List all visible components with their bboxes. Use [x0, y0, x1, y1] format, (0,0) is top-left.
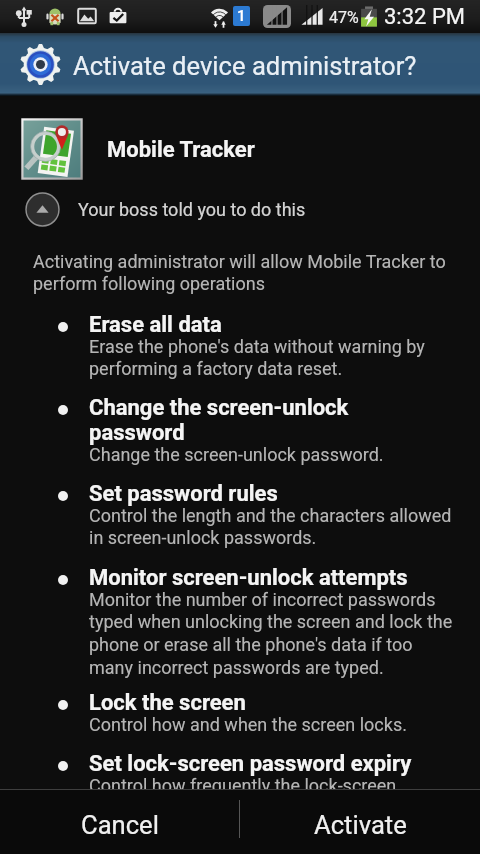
staticText: Erase all data	[89, 312, 439, 338]
staticText: Monitor the number of incorrect password…	[89, 589, 455, 679]
staticText: Control how and when the screen locks.	[89, 714, 455, 735]
staticText: Change the screen-unlock password	[89, 395, 439, 446]
button[interactable]: Activate	[240, 790, 480, 854]
staticText: Control how frequently the lock-screen	[89, 775, 455, 796]
staticText: Change the screen-unlock password.	[89, 444, 455, 465]
staticText: Erase the phone's data without warning b…	[89, 336, 455, 380]
staticText: Control the length and the characters al…	[89, 505, 455, 549]
staticText: Lock the screen	[89, 690, 439, 716]
staticText: Activating administrator will allow Mobi…	[33, 251, 449, 295]
staticText: Mobile Tracker	[107, 137, 255, 163]
staticText: Activate device administrator?	[73, 51, 417, 81]
staticText: 1	[237, 7, 246, 25]
staticText: Your boss told you to do this	[78, 199, 306, 220]
button[interactable]: Your boss told you to do this	[20, 188, 312, 230]
staticText: Set password rules	[89, 481, 439, 507]
staticText: Set lock-screen password expiry	[89, 751, 439, 777]
staticText: 3:32 PM	[384, 4, 465, 30]
staticText: Monitor screen-unlock attempts	[89, 565, 439, 591]
button[interactable]: Cancel	[0, 790, 239, 854]
staticText: Cancel	[81, 810, 159, 840]
staticText: 47%	[329, 8, 359, 27]
staticText: Activate	[314, 810, 407, 840]
